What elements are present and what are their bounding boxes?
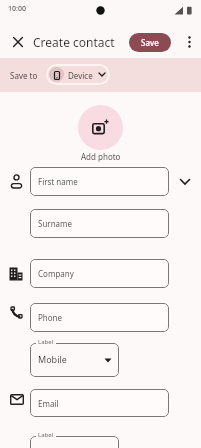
staticText: Phone <box>38 312 63 323</box>
staticText: Label <box>38 338 54 346</box>
staticText: Mobile <box>38 353 67 365</box>
button[interactable]: Save <box>129 33 171 52</box>
staticText: Company <box>38 268 74 279</box>
button[interactable] <box>186 36 193 48</box>
button[interactable]: Company <box>30 259 169 288</box>
staticText: Email <box>38 398 59 409</box>
button[interactable]: Device <box>46 64 110 85</box>
button[interactable]: First name <box>30 167 169 196</box>
button[interactable] <box>78 105 123 150</box>
staticText: Surname <box>38 218 73 229</box>
button[interactable] <box>179 178 191 186</box>
button[interactable]: Email <box>30 389 169 417</box>
button[interactable]: Mobile <box>30 343 119 377</box>
button[interactable]: Surname <box>30 209 169 238</box>
staticText: Save <box>141 37 159 48</box>
button[interactable]: Home <box>30 436 119 448</box>
staticText: Save to <box>10 70 38 81</box>
staticText: 10:00 <box>8 4 26 14</box>
staticText: First name <box>38 176 78 187</box>
staticText: Label <box>38 431 54 439</box>
button[interactable] <box>13 37 23 47</box>
staticText: Device <box>68 70 93 81</box>
staticText: Create contact <box>33 34 115 50</box>
button[interactable]: Phone <box>30 303 169 332</box>
staticText: Add photo <box>81 151 121 162</box>
